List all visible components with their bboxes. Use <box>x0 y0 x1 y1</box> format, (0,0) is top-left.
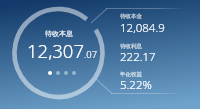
button[interactable]: 年化收益 <box>120 71 142 78</box>
staticText: 待收利息 <box>120 43 142 50</box>
staticText: 12,307 <box>27 38 84 63</box>
button[interactable]: 待收本金 <box>120 13 142 20</box>
staticText: 222.17 <box>120 49 156 65</box>
button[interactable]: 待收利息 <box>120 43 142 50</box>
staticText: .07 <box>84 48 98 61</box>
staticText: 5.22% <box>120 77 152 93</box>
staticText: 12,084.9 <box>120 20 165 36</box>
staticText: 待收本金 <box>120 13 142 20</box>
staticText: 待收本息 <box>45 29 73 38</box>
staticText: 年化收益 <box>120 71 142 78</box>
